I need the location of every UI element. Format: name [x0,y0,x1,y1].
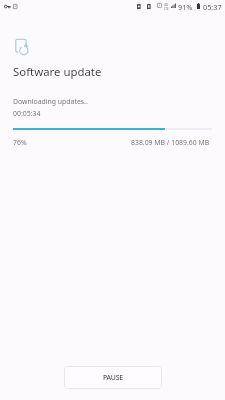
staticText: LTE [164,7,169,11]
staticText: Software update [13,64,102,80]
staticText: 76% [13,138,27,147]
staticText: 838.09 MB / 1089.60 MB [131,138,210,147]
staticText: 91% [178,2,193,12]
staticText: PAUSE [103,373,123,382]
staticText: 4G [164,3,169,7]
staticText: 05:37 [203,2,222,12]
staticText: Downloading updates.. [13,97,88,106]
button[interactable]: PAUSE [64,366,162,389]
staticText: 00:05:34 [13,109,41,118]
